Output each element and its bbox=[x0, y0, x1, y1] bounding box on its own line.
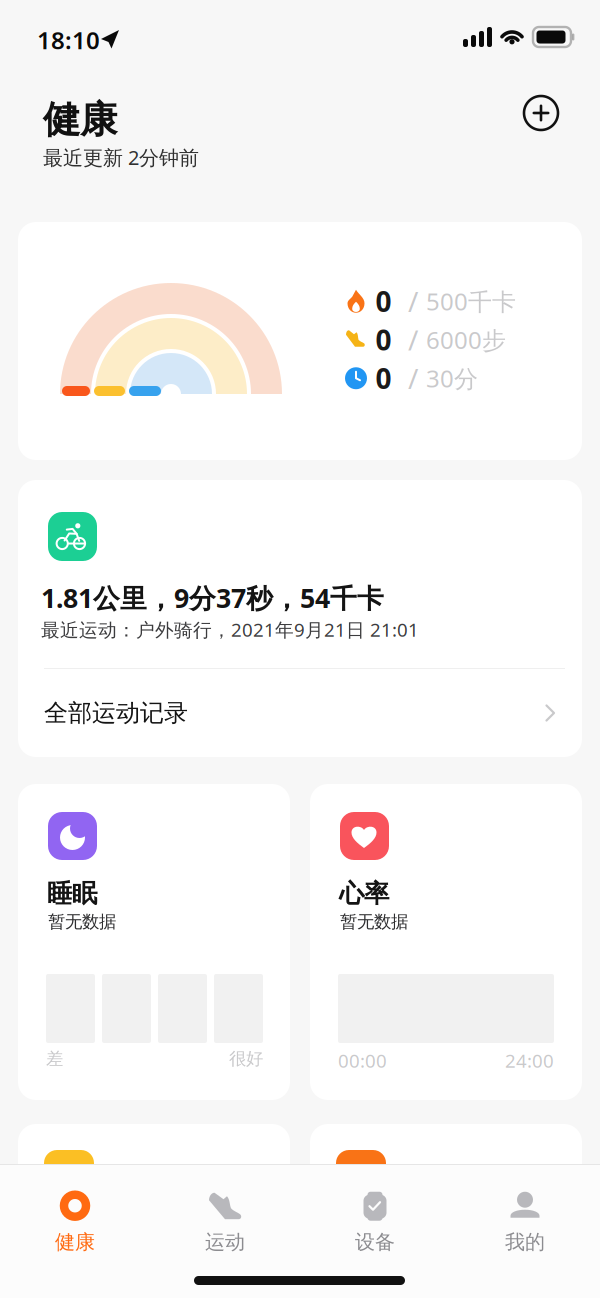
staticText: 差 bbox=[46, 1048, 63, 1069]
staticText: 00:00 bbox=[338, 1048, 387, 1073]
staticText: 健康 bbox=[55, 1230, 95, 1254]
staticText: 很好 bbox=[229, 1048, 263, 1069]
staticText: 设备 bbox=[355, 1230, 395, 1254]
staticText: 30分 bbox=[426, 362, 478, 394]
button[interactable]: 运动 bbox=[150, 1173, 300, 1269]
staticText: 24:00 bbox=[505, 1048, 554, 1073]
button[interactable]: 设备 bbox=[300, 1173, 450, 1269]
button[interactable]: 健康 bbox=[0, 1173, 150, 1269]
staticText: 18:10 bbox=[37, 24, 100, 56]
staticText: 1.81公里，9分37秒，54千卡 bbox=[41, 580, 384, 615]
staticText: 暂无数据 bbox=[48, 911, 116, 932]
staticText: 全部运动记录 bbox=[44, 698, 188, 728]
staticText: 0 bbox=[375, 360, 391, 397]
staticText: 500千卡 bbox=[426, 285, 516, 317]
staticText: / bbox=[408, 283, 418, 320]
button[interactable]: 添加 bbox=[515, 87, 567, 139]
staticText: 0 bbox=[375, 321, 391, 358]
staticText: 我的 bbox=[505, 1230, 545, 1254]
staticText: 最近运动：户外骑行，2021年9月21日 21:01 bbox=[41, 617, 419, 642]
staticText: 运动 bbox=[205, 1230, 245, 1254]
staticText: 最近更新 2分钟前 bbox=[43, 144, 199, 171]
staticText: 健康 bbox=[43, 97, 117, 143]
staticText: / bbox=[408, 321, 418, 358]
staticText: 心率 bbox=[339, 878, 389, 909]
button[interactable]: 全部运动记录 bbox=[18, 669, 582, 757]
staticText: 6000步 bbox=[426, 324, 506, 356]
staticText: / bbox=[408, 360, 418, 397]
staticText: 暂无数据 bbox=[340, 911, 408, 932]
button[interactable]: 我的 bbox=[450, 1173, 600, 1269]
staticText: 睡眠 bbox=[47, 878, 97, 909]
staticText: 0 bbox=[375, 283, 391, 320]
